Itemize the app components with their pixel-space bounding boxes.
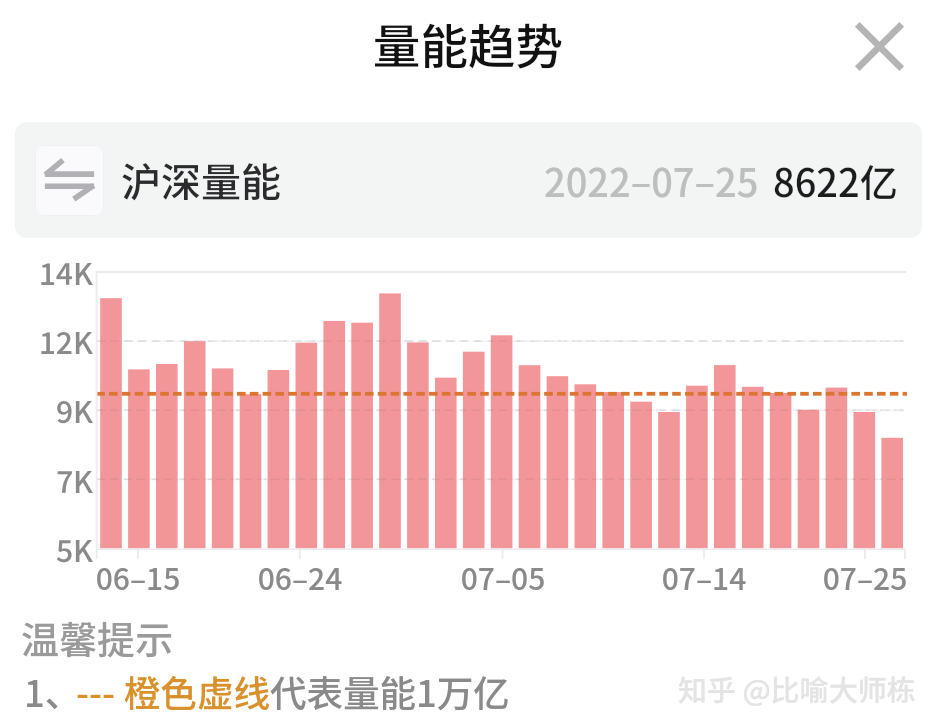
staticText: ---: [76, 665, 116, 718]
button[interactable]: Close: [848, 15, 911, 78]
staticText: 量能趋势: [0, 9, 936, 78]
staticText: 5K: [33, 527, 93, 570]
staticText: 1、: [24, 665, 82, 718]
staticText: 07–05: [443, 555, 563, 598]
button[interactable]: 沪深量能: [15, 122, 922, 238]
staticText: 代表量能1万亿: [270, 665, 510, 718]
staticText: 2022–07–25: [544, 153, 759, 208]
staticText: 8622亿: [773, 153, 898, 208]
staticText: 7K: [33, 458, 93, 501]
staticText: 12K: [33, 319, 93, 362]
staticText: 07–25: [805, 555, 925, 598]
staticText: 橙色虚线: [124, 665, 270, 718]
staticText: 温馨提示: [21, 610, 174, 665]
staticText: 沪深量能: [121, 151, 281, 209]
staticText: 06–24: [240, 555, 360, 598]
staticText: 07–14: [644, 555, 764, 598]
staticText: 9K: [33, 388, 93, 431]
staticText: 知乎 @比喻大师栋: [678, 667, 916, 709]
staticText: 14K: [33, 250, 93, 293]
staticText: 06–15: [78, 555, 198, 598]
